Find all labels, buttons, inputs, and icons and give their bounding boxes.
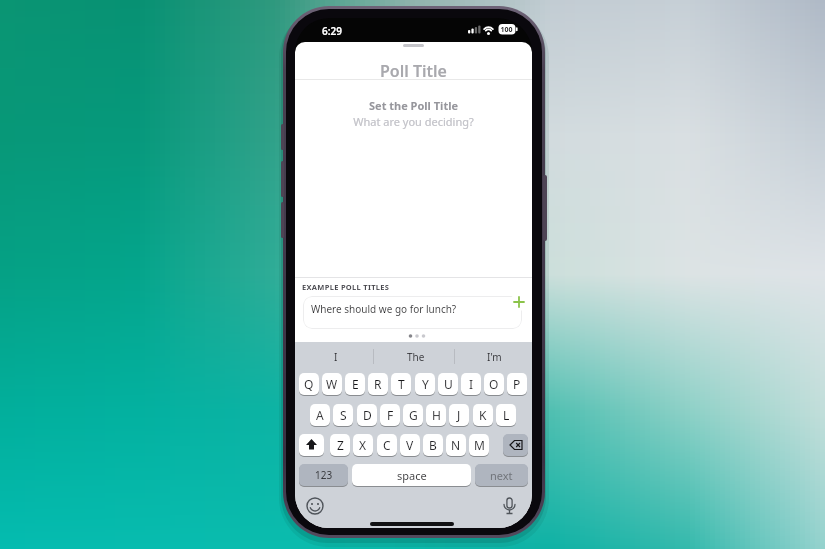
- staticText: What are you deciding?: [295, 114, 532, 129]
- button[interactable]: E: [345, 373, 365, 395]
- staticText: G: [409, 407, 418, 423]
- button[interactable]: X: [353, 434, 373, 456]
- button[interactable]: L: [496, 404, 516, 426]
- button[interactable]: space: [352, 464, 471, 486]
- staticText: C: [383, 437, 391, 453]
- staticText: next: [490, 468, 513, 483]
- staticText: V: [406, 437, 414, 453]
- staticText: J: [457, 407, 461, 423]
- staticText: 100: [498, 25, 515, 35]
- staticText: O: [489, 376, 499, 392]
- button[interactable]: H: [426, 404, 446, 426]
- staticText: T: [398, 376, 405, 392]
- staticText: L: [503, 407, 510, 423]
- staticText: space: [397, 468, 427, 483]
- staticText: Set the Poll Title: [295, 98, 532, 113]
- button[interactable]: N: [446, 434, 466, 456]
- staticText: B: [429, 437, 437, 453]
- button[interactable]: R: [368, 373, 388, 395]
- button[interactable]: V: [400, 434, 420, 456]
- staticText: R: [374, 376, 382, 392]
- staticText: H: [432, 407, 441, 423]
- button[interactable]: next: [475, 464, 528, 486]
- button[interactable]: M: [469, 434, 489, 456]
- staticText: U: [444, 376, 453, 392]
- button[interactable]: D: [357, 404, 377, 426]
- staticText: Z: [337, 437, 344, 453]
- button[interactable]: Q: [299, 373, 319, 395]
- button[interactable]: I: [298, 345, 373, 368]
- button[interactable]: 123: [299, 464, 348, 486]
- staticText: P: [513, 376, 521, 392]
- button[interactable]: I'm: [459, 345, 529, 368]
- button[interactable]: C: [377, 434, 397, 456]
- button[interactable]: [503, 434, 528, 456]
- staticText: 6:29: [307, 24, 357, 38]
- staticText: W: [326, 376, 338, 392]
- button[interactable]: Where should we go for lunch?: [303, 296, 522, 329]
- button[interactable]: [303, 496, 327, 516]
- staticText: I: [334, 350, 338, 364]
- staticText: Q: [304, 376, 314, 392]
- staticText: E: [352, 376, 359, 392]
- staticText: 123: [315, 468, 333, 482]
- button[interactable]: S: [333, 404, 353, 426]
- staticText: Y: [422, 376, 429, 392]
- staticText: D: [363, 407, 372, 423]
- staticText: I: [469, 376, 474, 392]
- button[interactable]: F: [380, 404, 400, 426]
- staticText: X: [359, 437, 367, 453]
- button[interactable]: The: [378, 345, 453, 368]
- staticText: Where should we go for lunch?: [311, 302, 457, 316]
- button[interactable]: B: [423, 434, 443, 456]
- button[interactable]: Z: [330, 434, 350, 456]
- button[interactable]: [299, 434, 324, 456]
- button[interactable]: I: [461, 373, 481, 395]
- staticText: A: [316, 407, 324, 423]
- staticText: K: [479, 407, 487, 423]
- button[interactable]: G: [403, 404, 423, 426]
- staticText: S: [340, 407, 347, 423]
- button[interactable]: A: [310, 404, 330, 426]
- staticText: The: [407, 350, 425, 364]
- button[interactable]: J: [449, 404, 469, 426]
- button[interactable]: [497, 496, 521, 516]
- button[interactable]: P: [507, 373, 527, 395]
- staticText: F: [387, 407, 394, 423]
- button[interactable]: W: [322, 373, 342, 395]
- staticText: I'm: [487, 350, 502, 364]
- button[interactable]: T: [391, 373, 411, 395]
- button[interactable]: K: [473, 404, 493, 426]
- button[interactable]: U: [438, 373, 458, 395]
- staticText: EXAMPLE POLL TITLES: [302, 282, 390, 292]
- button[interactable]: O: [484, 373, 504, 395]
- staticText: M: [474, 437, 485, 453]
- button[interactable]: Y: [415, 373, 435, 395]
- button[interactable]: [510, 293, 528, 311]
- staticText: Poll Title: [295, 60, 532, 82]
- staticText: N: [451, 437, 461, 453]
